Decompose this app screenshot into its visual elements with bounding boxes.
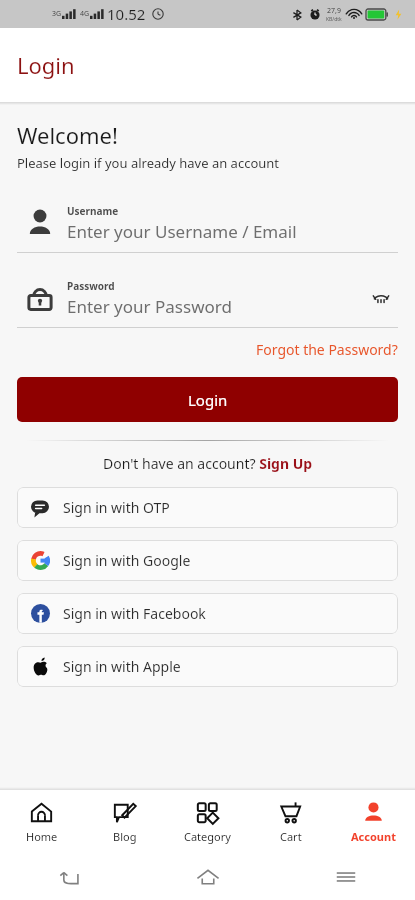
staticText: Sign in with Apple [63,657,181,676]
staticText: Blog [113,829,137,844]
staticText: Password [67,279,115,293]
button[interactable]: Don't have an account? Sign Up [103,454,313,473]
staticText: KB/dtk [326,16,342,23]
button[interactable]: Account [332,794,415,850]
staticText: Username [67,204,119,218]
staticText: Account [351,829,396,844]
button[interactable]: Show password [364,281,398,315]
button[interactable]: Category [166,794,249,850]
button[interactable]: Sign in with Facebook [17,593,398,634]
button[interactable]: Blog [83,794,166,850]
button[interactable]: Home [0,794,83,850]
button[interactable]: Sign in with OTP [17,487,398,528]
staticText: Sign in with Google [63,551,191,570]
button[interactable]: Forgot the Password? [256,340,398,359]
staticText: Category [184,829,231,844]
staticText: 27,9 [327,6,341,16]
staticText: Please login if you already have an acco… [17,154,280,172]
staticText: Cart [280,829,302,844]
staticText: Don't have an account? Sign Up [103,454,313,473]
button[interactable]: Home [139,854,277,900]
staticText: Sign in with Facebook [63,604,206,623]
staticText: Sign in with OTP [63,498,170,517]
staticText: Login [188,390,228,410]
staticText: Welcome! [17,120,118,150]
button[interactable]: Login [17,377,398,422]
button[interactable]: Menu [277,854,415,900]
staticText: Login [17,50,75,80]
button[interactable]: Back [0,854,139,900]
button[interactable]: Cart [249,794,332,850]
button[interactable]: Sign in with Apple [17,646,398,687]
staticText: Forgot the Password? [256,340,398,359]
staticText: Home [26,829,58,844]
staticText: Enter your Username / Email [67,220,297,243]
staticText: 10.52 [107,4,146,24]
staticText: 4G [80,9,90,19]
button[interactable]: Sign in with Google [17,540,398,581]
staticText: 3G [52,9,62,19]
staticText: Enter your Password [67,295,232,318]
